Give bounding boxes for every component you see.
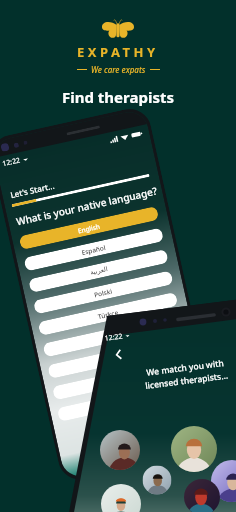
button[interactable] bbox=[42, 313, 183, 357]
staticText: Find therapists bbox=[62, 87, 174, 107]
button[interactable]: Español bbox=[23, 227, 164, 272]
staticText: English bbox=[77, 222, 101, 235]
staticText: Polski bbox=[93, 286, 114, 299]
staticText: Türkce bbox=[97, 308, 119, 321]
staticText: 12:22 bbox=[1, 155, 21, 169]
staticText: We care expats bbox=[91, 64, 146, 75]
button[interactable]: العربية bbox=[28, 249, 169, 293]
button[interactable] bbox=[52, 356, 193, 400]
button[interactable]: Polski bbox=[33, 270, 174, 315]
staticText: We match you with licensed therapists... bbox=[107, 352, 236, 395]
button[interactable] bbox=[57, 378, 197, 422]
staticText: العربية bbox=[89, 265, 109, 277]
button[interactable] bbox=[47, 335, 188, 379]
staticText: Español bbox=[81, 243, 107, 257]
button[interactable]: English bbox=[19, 206, 159, 250]
button[interactable]: Back bbox=[110, 346, 126, 362]
staticText: 12:22 bbox=[104, 331, 123, 344]
button[interactable]: Türkce bbox=[38, 292, 178, 336]
staticText: What is your native language? bbox=[15, 184, 158, 228]
staticText: Let's Start... bbox=[9, 180, 55, 200]
staticText: EXPATHY bbox=[77, 43, 159, 61]
